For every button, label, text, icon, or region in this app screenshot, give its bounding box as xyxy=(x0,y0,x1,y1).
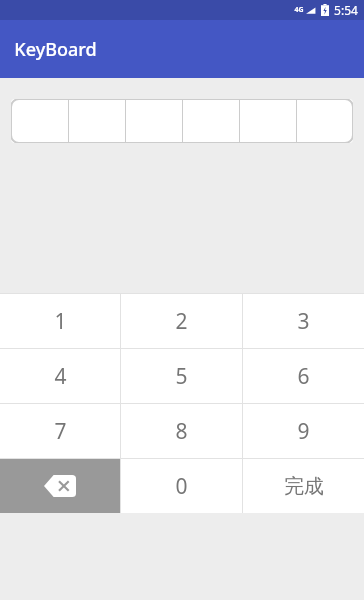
button[interactable]: 完成 xyxy=(243,459,364,513)
button[interactable]: 5 xyxy=(121,349,242,403)
staticText: 9 xyxy=(297,417,310,446)
button[interactable]: 8 xyxy=(121,404,242,458)
staticText: 0 xyxy=(175,472,188,501)
staticText: 1 xyxy=(54,307,67,336)
button[interactable]: Backspace xyxy=(0,459,120,513)
button[interactable]: 7 xyxy=(0,404,120,458)
staticText: 2 xyxy=(175,307,188,336)
button[interactable]: 0 xyxy=(121,459,242,513)
staticText: 5:54 xyxy=(334,2,358,18)
staticText: 5 xyxy=(175,362,188,391)
button[interactable]: 1 xyxy=(0,294,120,348)
button[interactable]: 9 xyxy=(243,404,364,458)
button[interactable]: 3 xyxy=(243,294,364,348)
staticText: 6 xyxy=(297,362,310,391)
staticText: KeyBoard xyxy=(14,37,97,62)
button[interactable] xyxy=(11,99,353,143)
button[interactable]: 2 xyxy=(121,294,242,348)
staticText: 7 xyxy=(54,417,67,446)
staticText: 4 xyxy=(54,362,67,391)
button[interactable]: 6 xyxy=(243,349,364,403)
staticText: 8 xyxy=(175,417,188,446)
staticText: 3 xyxy=(297,307,310,336)
staticText: 4G xyxy=(294,5,304,15)
button[interactable]: 4 xyxy=(0,349,120,403)
staticText: 完成 xyxy=(284,474,324,499)
